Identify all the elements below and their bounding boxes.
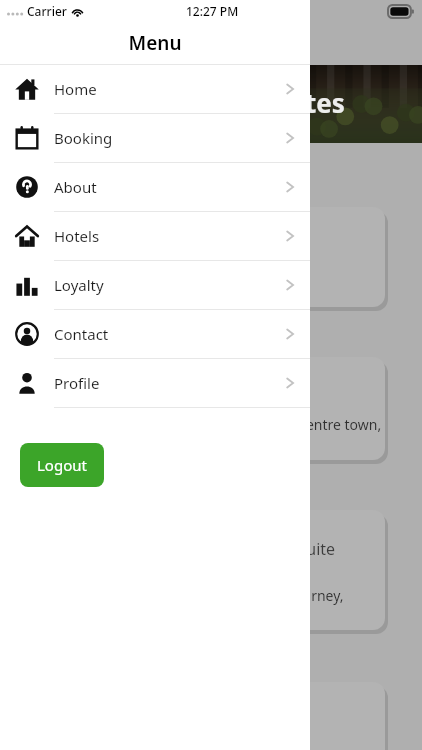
button[interactable]: About [0,163,310,211]
button[interactable]: Hotels [0,212,310,260]
staticText: Hotel suite [254,538,336,560]
staticText: Hotels [54,226,100,246]
staticText: Loyalty [54,275,104,295]
button[interactable] [18,510,385,630]
button[interactable]: Home [0,65,310,113]
other: Battery [388,5,414,18]
staticText: Home [54,79,97,99]
staticText: Logout [37,455,87,475]
staticText: Booking [54,128,113,148]
staticText: Contact [54,324,109,344]
button[interactable] [18,207,385,307]
staticText: Menu [128,30,182,56]
staticText: Carrier [27,3,67,19]
staticText: About [54,177,97,197]
button[interactable]: Loyalty [0,261,310,309]
button[interactable]: Profile [0,359,310,407]
button[interactable] [18,357,385,460]
button[interactable]: Logout [20,443,104,487]
button[interactable] [18,682,385,750]
staticText: 12:27 PM [186,3,239,19]
staticText: Lakes of Killarney, [226,586,344,605]
staticText: Suites [266,85,345,120]
button[interactable]: Contact [0,310,310,358]
staticText: Profile [54,373,100,393]
staticText: Dublin city centre town, [226,415,382,434]
button[interactable]: Booking [0,114,310,162]
